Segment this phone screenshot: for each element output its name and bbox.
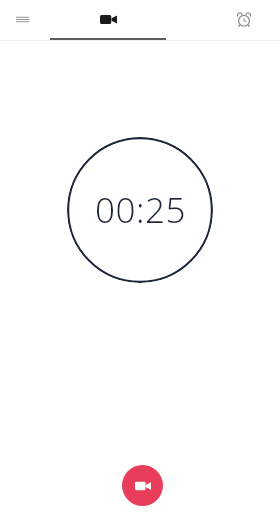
button[interactable]: 00:25 xyxy=(67,137,213,283)
button[interactable]: Open navigation menu xyxy=(0,0,44,38)
button[interactable]: Scheduled recordings xyxy=(208,0,280,38)
button[interactable]: Video recorder tab xyxy=(72,0,144,38)
staticText: 00:25 xyxy=(95,186,186,234)
button[interactable]: Start recording xyxy=(122,465,163,506)
